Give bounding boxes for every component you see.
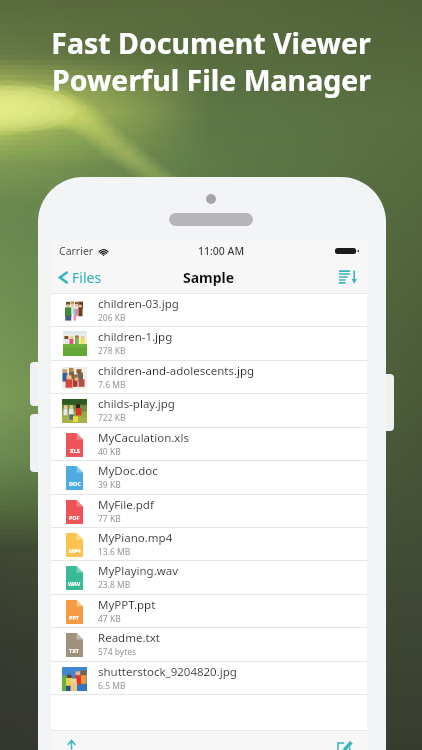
staticText: children-1.jpg (98, 329, 173, 345)
staticText: 47 KB (98, 613, 121, 625)
button[interactable]: Edit (323, 731, 367, 750)
staticText: 11:00 AM (198, 244, 245, 258)
staticText: 77 KB (98, 513, 121, 525)
button[interactable]: TXT (51, 628, 367, 660)
staticText: 7.6 MB (98, 379, 126, 391)
button[interactable]: children-and-adolescents.jpg (51, 361, 367, 393)
staticText: MyPiano.mp4 (98, 530, 173, 546)
button[interactable]: children-03.jpg (51, 294, 367, 326)
button[interactable]: DOC (51, 461, 367, 493)
staticText: WAV (68, 580, 81, 587)
staticText: MyPlaying.wav (98, 563, 179, 579)
button[interactable]: Sort (330, 261, 367, 293)
button[interactable]: WAV (51, 561, 367, 593)
staticText: 206 KB (98, 312, 126, 324)
staticText: 23.8 MB (98, 579, 131, 591)
button[interactable]: Upload (51, 731, 92, 750)
button[interactable]: childs-play.jpg (51, 394, 367, 426)
staticText: MP4 (69, 547, 81, 554)
staticText: Powerful File Manager (52, 61, 371, 100)
button[interactable]: PPT (51, 595, 367, 627)
staticText: 278 KB (98, 345, 126, 357)
staticText: 6.5 MB (98, 680, 126, 692)
button[interactable]: Files (51, 261, 110, 293)
staticText: children-03.jpg (98, 296, 179, 312)
staticText: shutterstock_9204820.jpg (98, 664, 237, 680)
staticText: DOC (69, 480, 81, 487)
staticText: XLS (70, 447, 80, 454)
staticText: Readme.txt (98, 630, 160, 646)
button[interactable]: children-1.jpg (51, 327, 367, 359)
button[interactable]: MP4 (51, 528, 367, 560)
staticText: 722 KB (98, 412, 126, 424)
staticText: PDF (69, 514, 80, 521)
staticText: MyFile.pdf (98, 497, 154, 513)
staticText: MyCaculation.xls (98, 430, 189, 446)
staticText: 13.6 MB (98, 546, 131, 558)
staticText: Carrier (59, 244, 94, 258)
staticText: 39 KB (98, 479, 121, 491)
button[interactable]: PDF (51, 495, 367, 527)
staticText: childs-play.jpg (98, 396, 175, 412)
button[interactable]: shutterstock_9204820.jpg (51, 662, 367, 694)
staticText: Files (72, 268, 102, 287)
staticText: PPT (69, 614, 80, 621)
staticText: MyPPT.ppt (98, 597, 156, 613)
staticText: MyDoc.doc (98, 463, 158, 479)
staticText: TXT (69, 647, 80, 654)
staticText: 574 bytes (98, 646, 137, 658)
staticText: children-and-adolescents.jpg (98, 363, 255, 379)
button[interactable]: XLS (51, 428, 367, 460)
staticText: Fast Document Viewer (51, 24, 371, 63)
staticText: 40 KB (98, 446, 121, 458)
staticText: Sample (183, 268, 235, 287)
